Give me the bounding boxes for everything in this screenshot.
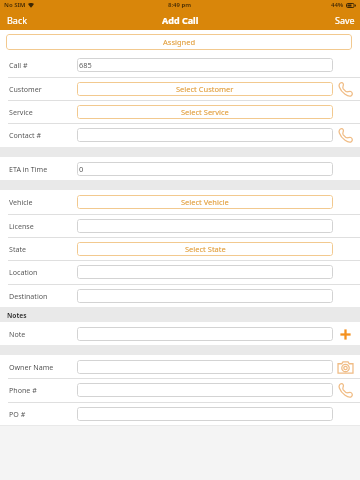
staticText: Back <box>7 14 28 26</box>
button[interactable]: Assigned <box>6 34 352 50</box>
button[interactable]: Service <box>0 100 360 123</box>
button[interactable]: PO # <box>0 402 360 425</box>
button[interactable]: ETA in Time <box>0 157 360 180</box>
button[interactable]: Phone # <box>0 378 360 401</box>
staticText: Notes <box>7 311 27 320</box>
staticText: Destination <box>9 291 48 301</box>
staticText: Phone # <box>9 385 37 395</box>
staticText: No SIM <box>4 1 26 9</box>
button[interactable]: Call # <box>0 53 360 76</box>
staticText: PO # <box>9 409 26 419</box>
button[interactable]: Customer <box>0 77 360 100</box>
button[interactable]: Location <box>0 260 360 283</box>
staticText: Save <box>335 14 355 26</box>
staticText: Select State <box>185 244 226 254</box>
button[interactable]: State <box>0 237 360 260</box>
button[interactable]: Call <box>335 79 355 99</box>
staticText: Call # <box>9 60 28 70</box>
button[interactable]: Note <box>0 322 360 345</box>
staticText: License <box>9 221 34 231</box>
staticText: Customer <box>9 84 42 94</box>
staticText: Assigned <box>163 37 196 47</box>
staticText: ETA in Time <box>9 164 48 174</box>
staticText: Select Vehicle <box>181 197 229 207</box>
button[interactable]: Camera <box>335 357 355 377</box>
staticText: Note <box>9 329 26 339</box>
staticText: Owner Name <box>9 362 54 372</box>
staticText: 685 <box>79 60 92 70</box>
button[interactable]: Owner Name <box>0 355 360 378</box>
staticText: Select Service <box>181 107 229 117</box>
staticText: Service <box>9 107 33 117</box>
button[interactable]: Destination <box>0 284 360 307</box>
button[interactable]: Call <box>335 380 355 400</box>
button[interactable]: Contact # <box>0 123 360 146</box>
staticText: Location <box>9 267 38 277</box>
button[interactable]: Vehicle <box>0 190 360 213</box>
staticText: 0 <box>79 164 84 174</box>
staticText: 44% <box>331 1 344 9</box>
staticText: 8:49 pm <box>168 1 192 9</box>
staticText: Add Call <box>162 14 199 26</box>
button[interactable]: Call <box>335 125 355 145</box>
button[interactable]: Back <box>7 14 28 26</box>
staticText: State <box>9 244 26 254</box>
staticText: Select Customer <box>176 84 234 94</box>
button[interactable]: License <box>0 214 360 237</box>
button[interactable]: Save <box>335 14 355 26</box>
staticText: Vehicle <box>9 197 33 207</box>
button[interactable]: Add <box>335 324 355 344</box>
staticText: Contact # <box>9 130 42 140</box>
